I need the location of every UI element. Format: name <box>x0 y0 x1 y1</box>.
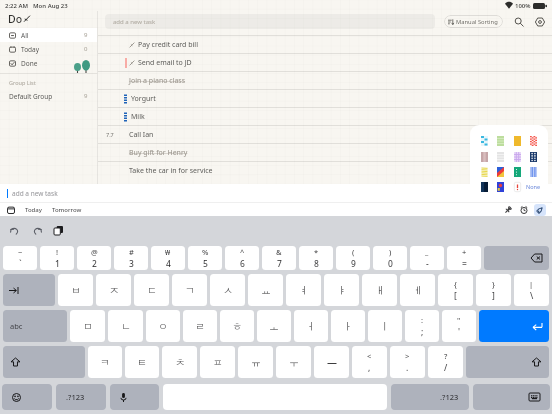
button[interactable]: .?123 <box>56 384 106 410</box>
button[interactable]: Tag <box>534 204 546 216</box>
button[interactable]: Take the car in for service <box>98 162 552 179</box>
button[interactable]: ! <box>40 246 74 270</box>
button[interactable] <box>2 384 52 410</box>
button[interactable]: > <box>390 346 425 378</box>
button[interactable]: None <box>526 179 541 194</box>
button[interactable]: # <box>114 246 148 270</box>
button[interactable]: Join a piano class <box>98 72 552 89</box>
button[interactable]: ^ <box>225 246 259 270</box>
button[interactable]: ) <box>373 246 407 270</box>
button[interactable]: * <box>299 246 333 270</box>
button[interactable]: 7.7 <box>98 126 552 143</box>
button[interactable]: @ <box>77 246 111 270</box>
button[interactable]: ㅊ <box>162 346 197 378</box>
button[interactable] <box>510 179 525 194</box>
button[interactable] <box>110 384 159 410</box>
button[interactable]: ㄱ <box>172 274 207 306</box>
button[interactable]: & <box>262 246 296 270</box>
button[interactable]: Reminder <box>518 204 530 216</box>
button[interactable] <box>484 246 549 270</box>
button[interactable]: ㅗ <box>257 310 291 342</box>
button[interactable]: Send email to JD <box>98 54 552 71</box>
button[interactable]: Today <box>23 204 44 216</box>
button[interactable] <box>477 179 492 194</box>
button[interactable]: Paste <box>52 224 65 237</box>
button[interactable]: Manual Sorting <box>444 15 503 28</box>
button[interactable] <box>526 133 541 149</box>
button[interactable]: ㄷ <box>134 274 169 306</box>
button[interactable]: ㅈ <box>96 274 131 306</box>
button[interactable]: ㅓ <box>294 310 328 342</box>
button[interactable]: Settings <box>533 15 547 29</box>
button[interactable] <box>510 149 525 164</box>
button[interactable]: ㅣ <box>368 310 402 342</box>
button[interactable]: All <box>0 28 97 42</box>
button[interactable]: Milk <box>98 108 552 125</box>
button[interactable] <box>479 310 549 342</box>
button[interactable] <box>493 149 508 164</box>
button[interactable]: % <box>188 246 222 270</box>
button[interactable]: { <box>438 274 473 306</box>
button[interactable]: ㅔ <box>400 274 435 306</box>
button[interactable] <box>3 346 85 378</box>
button[interactable] <box>493 179 508 194</box>
button[interactable]: Undo <box>8 224 21 237</box>
button[interactable]: < <box>352 346 387 378</box>
button[interactable]: abc <box>3 310 67 342</box>
button[interactable] <box>477 149 492 164</box>
button[interactable]: Today <box>0 42 97 56</box>
button[interactable]: + <box>447 246 481 270</box>
button[interactable]: ㄹ <box>183 310 217 342</box>
button[interactable]: ㅠ <box>238 346 273 378</box>
button[interactable] <box>473 384 550 410</box>
button[interactable]: ~ <box>3 246 37 270</box>
button[interactable] <box>510 133 525 149</box>
button[interactable]: " <box>442 310 476 342</box>
button[interactable] <box>466 346 549 378</box>
button[interactable]: Yorgurt <box>98 90 552 107</box>
button[interactable]: ㅂ <box>58 274 93 306</box>
button[interactable]: : <box>405 310 439 342</box>
button[interactable] <box>477 164 492 179</box>
button[interactable]: ? <box>428 346 463 378</box>
button[interactable]: .?123 <box>391 384 469 410</box>
button[interactable]: Default Group <box>0 90 97 102</box>
staticText: ㅔ <box>413 284 423 297</box>
button[interactable]: } <box>476 274 511 306</box>
button[interactable]: ㅇ <box>146 310 180 342</box>
button[interactable]: Pay credit card bill <box>98 36 552 53</box>
button[interactable]: ㅁ <box>70 310 105 342</box>
button[interactable] <box>477 133 492 149</box>
button[interactable]: add a new task <box>105 14 435 29</box>
button[interactable]: ㅌ <box>125 346 159 378</box>
button[interactable] <box>493 164 508 179</box>
button[interactable] <box>526 164 541 179</box>
button[interactable]: ㅕ <box>286 274 321 306</box>
button[interactable]: ㅋ <box>88 346 122 378</box>
button[interactable]: ㅅ <box>210 274 245 306</box>
button[interactable] <box>510 164 525 179</box>
button[interactable] <box>493 133 508 149</box>
button[interactable]: ㅐ <box>362 274 397 306</box>
button[interactable]: ₩ <box>151 246 185 270</box>
button[interactable]: _ <box>410 246 444 270</box>
button[interactable]: Done <box>0 56 97 70</box>
button[interactable]: ㄴ <box>108 310 143 342</box>
button[interactable]: ㅜ <box>276 346 311 378</box>
button[interactable]: ㅏ <box>331 310 365 342</box>
button[interactable]: Search <box>512 15 526 29</box>
button[interactable] <box>526 149 541 164</box>
button[interactable]: Buy gift for Henry <box>98 144 552 161</box>
button[interactable]: | <box>514 274 549 306</box>
button[interactable]: ㅎ <box>220 310 254 342</box>
button[interactable]: Redo <box>30 224 43 237</box>
button[interactable]: — <box>314 346 349 378</box>
button[interactable]: ㅍ <box>200 346 235 378</box>
button[interactable]: Tomorrow <box>50 204 84 216</box>
button[interactable]: Pin <box>502 204 514 216</box>
button[interactable] <box>3 274 55 306</box>
button[interactable]: ㅑ <box>324 274 359 306</box>
button[interactable]: ( <box>336 246 370 270</box>
button[interactable]: ㅛ <box>248 274 283 306</box>
